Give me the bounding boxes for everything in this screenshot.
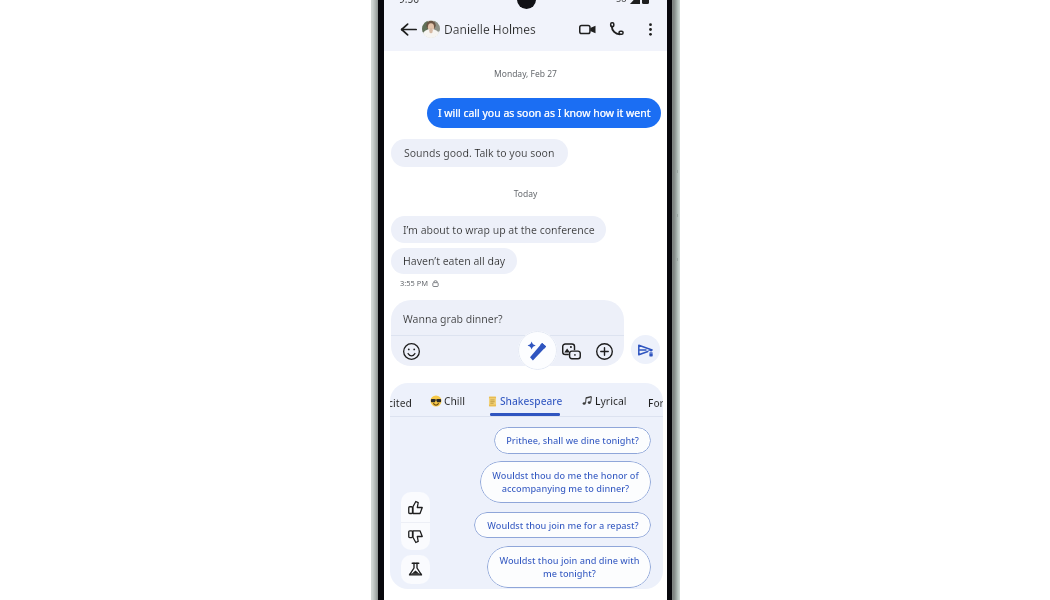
button[interactable]: Shakespeare <box>487 394 563 408</box>
staticText: Chill <box>444 394 466 408</box>
button[interactable]: Sounds good. Talk to you soon <box>391 139 568 167</box>
staticText: Lyrical <box>595 394 627 408</box>
button[interactable]: Emoji <box>402 342 420 360</box>
button[interactable]: Contact photo <box>422 20 440 38</box>
button[interactable]: Magic Compose <box>518 331 557 370</box>
staticText: Danielle Holmes <box>444 21 536 37</box>
button[interactable]: Call <box>606 18 628 40</box>
staticText: 58 <box>616 0 627 4</box>
button[interactable]: I will call you as soon as I know how it… <box>427 98 661 128</box>
button[interactable]: Send <box>631 335 660 364</box>
button[interactable]: Gallery <box>562 342 581 361</box>
button[interactable]: Lyrical <box>582 394 627 408</box>
button[interactable]: More options <box>639 18 661 40</box>
button[interactable]: Thumbs up <box>401 492 430 522</box>
button[interactable]: Wouldst thou join and dine with me tonig… <box>487 546 651 588</box>
button[interactable]: Back <box>397 18 419 40</box>
staticText: 9:56 <box>399 0 419 6</box>
staticText: I’m about to wrap up at the conference <box>403 223 595 237</box>
staticText: 3:55 PM <box>400 278 429 288</box>
button[interactable]: Add attachment <box>595 342 613 360</box>
staticText: Wouldst thou join and dine with me tonig… <box>499 554 640 580</box>
button[interactable]: I’m about to wrap up at the conference <box>391 216 606 243</box>
button[interactable]: Wouldst thou join me for a repast? <box>474 512 651 538</box>
staticText: For <box>648 396 663 410</box>
staticText: Monday, Feb 27 <box>384 68 667 80</box>
staticText: Shakespeare <box>500 394 563 408</box>
staticText: Wanna grab dinner? <box>403 312 503 326</box>
staticText: Wouldst thou do me the honor of accompan… <box>492 469 639 495</box>
staticText: Prithee, shall we dine tonight? <box>506 434 639 447</box>
button[interactable]: Video call <box>576 18 598 40</box>
button[interactable]: Wouldst thou do me the honor of accompan… <box>480 461 651 503</box>
staticText: Haven’t eaten all day <box>403 254 506 268</box>
staticText: I will call you as soon as I know how it… <box>438 106 651 120</box>
button[interactable]: Prithee, shall we dine tonight? <box>494 427 651 454</box>
button[interactable]: Thumbs down <box>401 522 430 550</box>
staticText: Sounds good. Talk to you soon <box>404 146 555 160</box>
staticText: cited <box>390 396 412 410</box>
staticText: Wouldst thou join me for a repast? <box>487 519 639 532</box>
button[interactable]: Chill <box>430 394 466 408</box>
staticText: Today <box>384 188 667 200</box>
button[interactable]: Labs <box>401 555 430 584</box>
button[interactable]: Haven’t eaten all day <box>391 248 517 274</box>
